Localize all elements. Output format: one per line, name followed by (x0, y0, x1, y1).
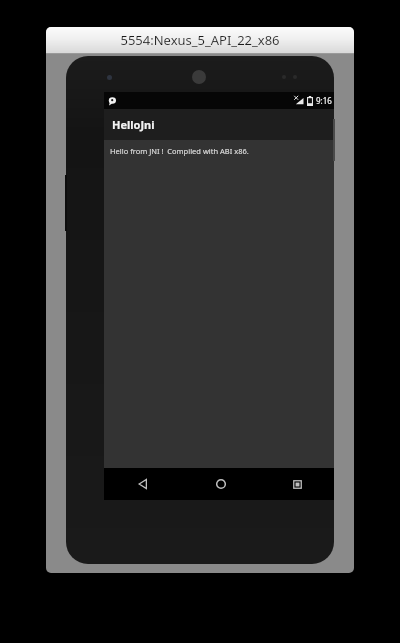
staticText: 5554:Nexus_5_API_22_x86 (120, 31, 280, 49)
staticText: Hello from JNI ! Compiled with ABI x86. (110, 146, 249, 156)
staticText: 9:16 (316, 95, 332, 106)
button[interactable]: Back (104, 468, 182, 500)
button[interactable]: HelloJni (104, 109, 334, 140)
button[interactable]: Home (182, 468, 259, 500)
button[interactable]: Recent apps (259, 468, 334, 500)
staticText: HelloJni (112, 117, 155, 132)
